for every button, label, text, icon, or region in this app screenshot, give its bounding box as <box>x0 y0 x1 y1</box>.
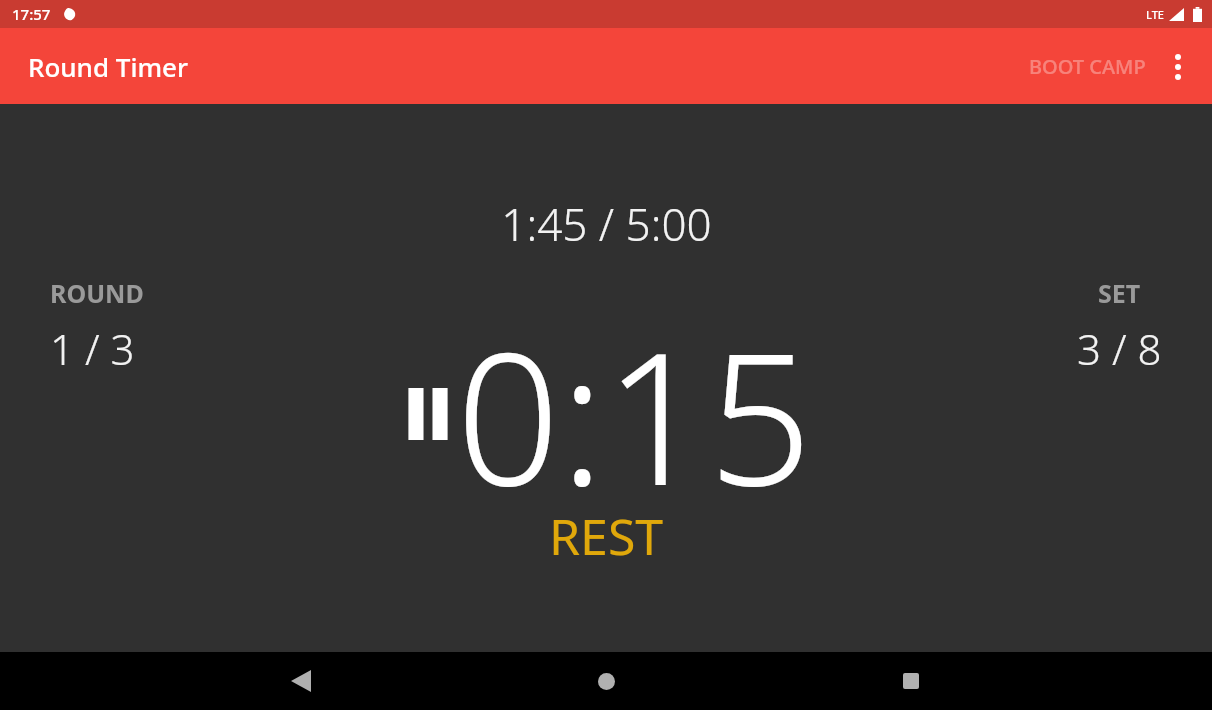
staticText: 1 / 3 <box>50 320 135 377</box>
button[interactable]: Back <box>272 652 330 710</box>
button[interactable]: Home <box>577 652 635 710</box>
staticText: 1:45 / 5:00 <box>501 194 712 254</box>
staticText: BOOT CAMP <box>1029 53 1146 80</box>
button[interactable]: More options <box>1154 43 1202 91</box>
button[interactable]: Recent apps <box>882 652 940 710</box>
staticText: ROUND <box>50 276 144 310</box>
staticText: REST <box>549 502 664 570</box>
staticText: SET <box>1098 276 1141 310</box>
button[interactable]: Pause timer <box>400 290 813 538</box>
staticText: 17:57 <box>12 4 51 24</box>
staticText: Round Timer <box>28 49 188 84</box>
staticText: 3 / 8 <box>1077 320 1162 377</box>
staticText: LTE <box>1146 7 1164 22</box>
staticText: 0:15 <box>456 290 813 538</box>
button[interactable]: BOOT CAMP <box>1021 41 1154 92</box>
